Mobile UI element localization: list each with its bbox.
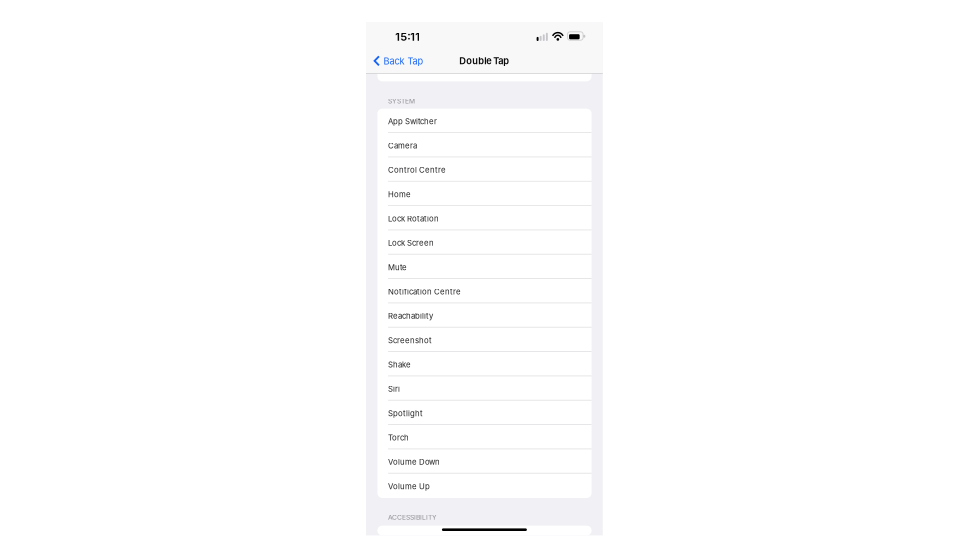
- button[interactable]: Screenshot: [377, 328, 592, 352]
- staticText: Screenshot: [388, 336, 432, 345]
- button[interactable]: Home: [377, 182, 592, 206]
- button[interactable]: Volume Up: [377, 474, 592, 498]
- button[interactable]: Lock Rotation: [377, 206, 592, 230]
- button[interactable]: Lock Screen: [377, 230, 592, 255]
- staticText: Home: [388, 190, 411, 199]
- button[interactable]: Back Tap: [372, 50, 429, 71]
- button[interactable]: Mute: [377, 255, 592, 279]
- button[interactable]: Camera: [377, 133, 592, 157]
- button[interactable]: Volume Down: [377, 449, 592, 474]
- button[interactable]: Shake: [377, 352, 592, 376]
- staticText: Shake: [388, 360, 411, 369]
- staticText: Control Centre: [388, 165, 446, 175]
- button[interactable]: Notification Centre: [377, 279, 592, 303]
- button[interactable]: Spotlight: [377, 401, 592, 425]
- button[interactable]: AssistiveTouch: [377, 526, 592, 535]
- button[interactable]: App Switcher: [377, 109, 592, 133]
- button[interactable]: Siri: [377, 376, 592, 401]
- staticText: Back Tap: [383, 55, 423, 67]
- staticText: Lock Rotation: [388, 214, 439, 223]
- button[interactable]: Control Centre: [377, 157, 592, 182]
- staticText: 15:11: [395, 30, 420, 43]
- staticText: Spotlight: [388, 409, 423, 418]
- staticText: Lock Screen: [388, 238, 434, 248]
- staticText: Reachability: [388, 311, 433, 321]
- button[interactable]: Reachability: [377, 303, 592, 328]
- button[interactable]: Torch: [377, 425, 592, 449]
- staticText: Notification Centre: [388, 287, 461, 296]
- staticText: ACCESSIBILITY: [388, 513, 437, 521]
- staticText: Torch: [388, 433, 409, 442]
- staticText: App Switcher: [388, 117, 437, 126]
- staticText: Mute: [388, 263, 407, 272]
- staticText: Double Tap: [459, 55, 509, 66]
- staticText: Camera: [388, 141, 417, 150]
- staticText: Siri: [388, 384, 400, 394]
- staticText: Volume Up: [388, 482, 430, 491]
- staticText: Volume Down: [388, 457, 440, 467]
- staticText: SYSTEM: [388, 97, 415, 105]
